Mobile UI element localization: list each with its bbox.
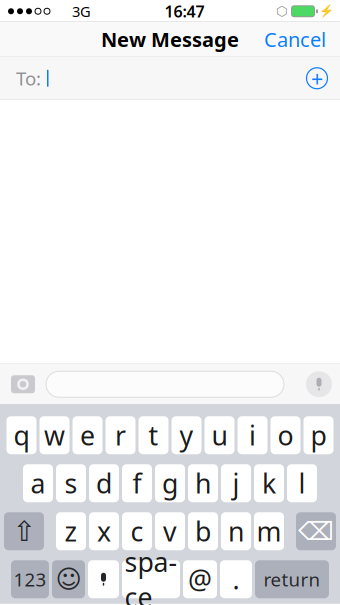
button[interactable]: Camera: [4, 365, 42, 403]
button[interactable]: return: [255, 560, 329, 598]
button[interactable]: k: [254, 464, 284, 502]
staticText: h: [195, 465, 211, 501]
staticText: x: [97, 513, 111, 549]
staticText: y: [179, 417, 193, 453]
button[interactable]: h: [188, 464, 218, 502]
button[interactable]: x: [89, 512, 119, 550]
button[interactable]: p: [303, 416, 333, 454]
button[interactable]: n: [221, 512, 251, 550]
staticText: k: [262, 465, 276, 501]
button[interactable]: space: [122, 560, 180, 598]
staticText: e: [80, 417, 95, 453]
button[interactable]: o: [270, 416, 300, 454]
staticText: ⇧: [12, 515, 35, 547]
button[interactable]: y: [171, 416, 201, 454]
staticText: o: [277, 417, 293, 453]
staticText: z: [64, 513, 77, 549]
button[interactable]: b: [188, 512, 218, 550]
staticText: ⬡: [276, 4, 288, 19]
staticText: .: [232, 561, 239, 597]
button[interactable]: j: [221, 464, 251, 502]
staticText: space: [124, 544, 177, 605]
staticText: b: [195, 513, 211, 549]
staticText: u: [211, 417, 227, 453]
button[interactable]: Emoji: [52, 560, 85, 598]
button[interactable]: d: [89, 464, 119, 502]
staticText: ☺: [55, 565, 81, 594]
button[interactable]: 123: [11, 560, 49, 598]
staticText: l: [298, 465, 305, 501]
button[interactable]: w: [39, 416, 69, 454]
staticText: s: [64, 465, 77, 501]
button[interactable]: @: [183, 560, 217, 598]
staticText: @: [188, 561, 212, 597]
staticText: j: [232, 465, 239, 501]
staticText: a: [30, 465, 45, 501]
button[interactable]: l: [287, 464, 317, 502]
button[interactable]: i: [237, 416, 267, 454]
button[interactable]: z: [56, 512, 86, 550]
button[interactable]: g: [155, 464, 185, 502]
staticText: c: [130, 513, 143, 549]
button[interactable]: .: [220, 560, 252, 598]
button[interactable]: Dictation: [88, 560, 119, 598]
button[interactable]: Shift: [4, 512, 44, 550]
staticText: d: [96, 465, 112, 501]
staticText: Cancel: [264, 26, 326, 53]
staticText: t: [148, 417, 158, 453]
button[interactable]: a: [23, 464, 53, 502]
staticText: i: [249, 417, 256, 453]
button[interactable]: Delete: [296, 512, 336, 550]
staticText: 3G: [72, 1, 91, 21]
button[interactable]: v: [155, 512, 185, 550]
button[interactable]: m: [254, 512, 284, 550]
staticText: 16:47: [164, 1, 204, 22]
staticText: f: [132, 465, 141, 501]
staticText: p: [310, 417, 326, 453]
staticText: 123: [13, 567, 46, 592]
button[interactable]: Cancel: [254, 20, 336, 59]
staticText: ⌫: [298, 517, 334, 546]
staticText: To:: [16, 66, 41, 91]
button[interactable]: q: [6, 416, 36, 454]
staticText: New Message: [101, 26, 239, 53]
staticText: q: [13, 417, 29, 453]
button[interactable]: s: [56, 464, 86, 502]
staticText: +: [311, 64, 323, 92]
staticText: w: [44, 417, 65, 453]
button[interactable]: t: [138, 416, 168, 454]
button[interactable]: u: [204, 416, 234, 454]
button[interactable]: r: [105, 416, 135, 454]
button[interactable]: Dictate: [301, 366, 337, 402]
staticText: n: [228, 513, 244, 549]
staticText: r: [115, 417, 126, 453]
staticText: v: [163, 513, 177, 549]
button[interactable]: f: [122, 464, 152, 502]
staticText: ⚡: [319, 4, 334, 18]
button[interactable]: Add contact: [300, 61, 334, 95]
staticText: g: [162, 465, 178, 501]
button[interactable]: e: [72, 416, 102, 454]
staticText: m: [256, 513, 281, 549]
button[interactable]: c: [122, 512, 152, 550]
staticText: return: [263, 567, 320, 592]
